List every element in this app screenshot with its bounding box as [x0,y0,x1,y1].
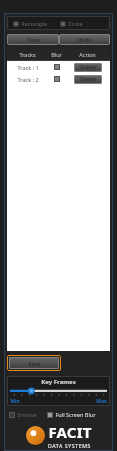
button[interactable]: Blur checkbox [54,76,60,82]
button[interactable]: Track : 1 [7,61,110,73]
button[interactable]: Circle [59,19,84,28]
staticText: Save [28,360,41,367]
button[interactable]: Inverse [8,410,38,419]
button[interactable]: Full Screen Blur [46,410,97,419]
staticText: Track : 1 [17,64,39,71]
button[interactable]: Save [9,357,59,369]
staticText: Delete [80,76,97,83]
staticText: Undo [77,36,92,43]
staticText: Tracks [19,51,36,58]
button[interactable]: Clear [7,34,59,45]
staticText: Full Screen Blur [55,411,96,418]
staticText: Blur [51,51,62,58]
button[interactable]: Track : 2 [7,73,110,85]
staticText: Action [79,51,96,58]
staticText: Delete [80,64,97,71]
staticText: Track : 2 [17,76,39,83]
staticText: DATA SYSTEMS [48,442,91,448]
staticText: Max [96,398,107,404]
button[interactable]: Key frames slider [10,388,107,397]
staticText: Inverse [17,411,37,418]
staticText: FACIT [48,422,92,442]
button[interactable]: Delete [74,63,102,72]
staticText: Min [10,398,20,404]
button[interactable]: Undo [59,34,110,45]
button[interactable]: Delete [74,75,102,84]
staticText: Circle [68,20,83,27]
staticText: Rectangle [21,20,47,27]
staticText: Key Frames [41,378,76,386]
button[interactable]: Rectangle [12,19,48,28]
staticText: Clear [26,36,41,43]
button[interactable]: Blur checkbox [54,64,60,70]
